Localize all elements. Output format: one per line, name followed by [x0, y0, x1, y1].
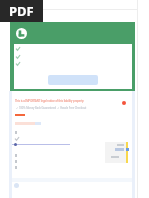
staticText: ✓ 100% Money Back Guaranteed ✓ Hassle Fr…: [16, 106, 87, 110]
staticText: This is a IMPORTANT legal notice of this…: [15, 99, 84, 103]
staticText: PDF: [9, 2, 34, 20]
button[interactable]: Brand logo: [16, 28, 27, 39]
button[interactable]: PDF: [0, 0, 43, 22]
